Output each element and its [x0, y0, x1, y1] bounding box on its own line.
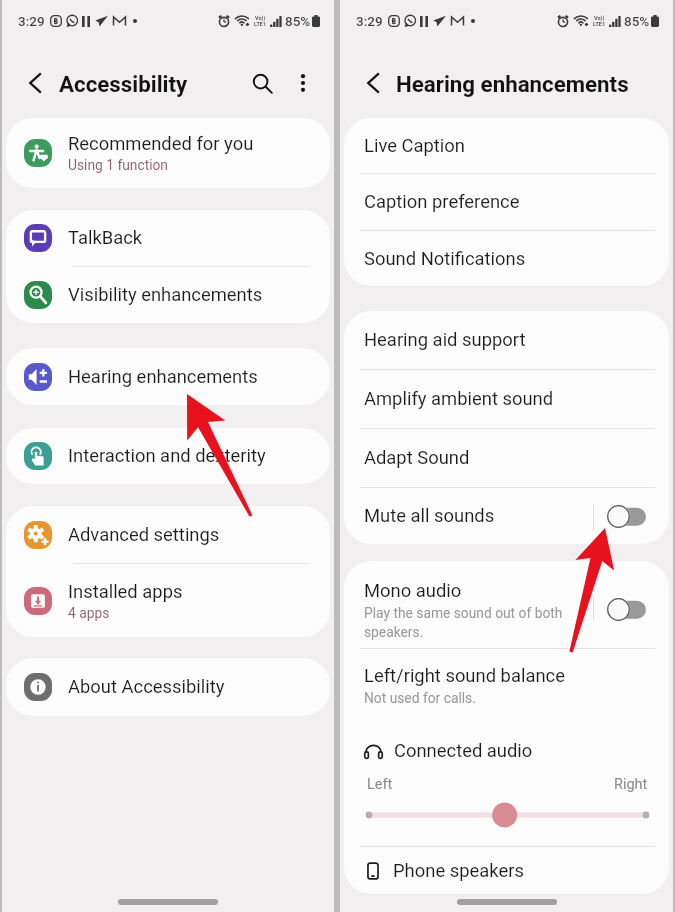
staticText: Hearing enhancements — [396, 71, 629, 97]
button[interactable]: Adapt Sound — [344, 429, 669, 487]
staticText: Sound Notifications — [364, 248, 526, 270]
button[interactable]: Hearing aid support — [344, 311, 669, 369]
staticText: Using 1 function — [68, 157, 168, 173]
button[interactable]: Installed apps — [6, 564, 330, 637]
staticText: TalkBack — [68, 227, 143, 249]
button[interactable]: Live Caption — [344, 118, 669, 173]
button[interactable]: TalkBack — [6, 210, 330, 266]
staticText: 3:29 — [18, 13, 45, 29]
button[interactable]: About Accessibility — [6, 658, 330, 716]
staticText: Hearing enhancements — [68, 366, 258, 388]
staticText: Visibility enhancements — [68, 284, 263, 306]
staticText: LTE1 — [254, 21, 267, 27]
button[interactable]: Sound balance slider — [364, 801, 651, 829]
staticText: 4 apps — [68, 605, 110, 621]
staticText: About Accessibility — [68, 676, 225, 698]
button[interactable]: Advanced settings — [6, 506, 330, 563]
staticText: 85% — [285, 13, 311, 29]
button[interactable]: Hearing enhancements — [6, 348, 330, 405]
button[interactable]: More options — [288, 68, 318, 98]
staticText: Play the same sound out of both speakers… — [364, 605, 563, 640]
button[interactable]: Toggle — [607, 598, 646, 621]
staticText: LTE1 — [593, 21, 606, 27]
staticText: 3:29 — [356, 13, 383, 29]
staticText: Mute all sounds — [364, 505, 495, 527]
button[interactable]: Amplify ambient sound — [344, 370, 669, 428]
button[interactable]: Navigate up — [358, 67, 390, 99]
button[interactable]: Interaction and dexterity — [6, 428, 330, 484]
button[interactable]: Recommended for you — [6, 118, 330, 188]
staticText: Left — [367, 776, 393, 793]
staticText: Vo)) — [594, 15, 605, 21]
button[interactable]: Mute all sounds — [344, 488, 669, 544]
button[interactable]: Navigate up — [20, 67, 52, 99]
button[interactable]: Phone speakers — [344, 847, 669, 894]
staticText: Mono audio — [364, 580, 462, 602]
staticText: Installed apps — [68, 581, 183, 603]
staticText: 85% — [624, 13, 650, 29]
staticText: Advanced settings — [68, 524, 220, 546]
staticText: Recommended for you — [68, 133, 254, 155]
staticText: Connected audio — [394, 740, 533, 762]
button[interactable]: Search — [245, 66, 279, 100]
button[interactable]: Left/right sound balance — [344, 649, 669, 720]
staticText: Caption preference — [364, 191, 520, 213]
button[interactable]: Caption preference — [344, 174, 669, 230]
staticText: Accessibility — [59, 71, 188, 97]
staticText: Left/right sound balance — [364, 665, 565, 687]
staticText: Vo)) — [255, 15, 266, 21]
staticText: Phone speakers — [393, 860, 524, 882]
staticText: Adapt Sound — [364, 447, 470, 469]
staticText: Amplify ambient sound — [364, 388, 554, 410]
staticText: Interaction and dexterity — [68, 445, 266, 467]
button[interactable]: Visibility enhancements — [6, 267, 330, 323]
staticText: Live Caption — [364, 135, 465, 157]
staticText: Right — [614, 776, 648, 793]
button[interactable]: Sound Notifications — [344, 231, 669, 286]
button[interactable]: Mono audio — [344, 561, 669, 648]
button[interactable]: Toggle — [607, 505, 646, 528]
staticText: Hearing aid support — [364, 329, 526, 351]
staticText: Not used for calls. — [364, 690, 476, 706]
